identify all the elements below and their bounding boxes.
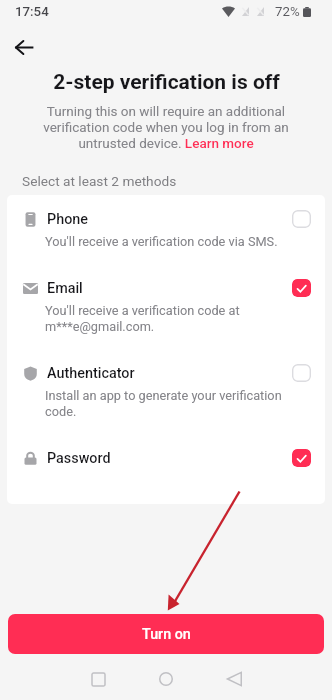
button[interactable] [292,364,311,382]
staticText: Turning this on will require an addition… [40,103,292,151]
staticText: 2-step verification is off [53,70,280,95]
staticText: Authenticator [47,365,135,382]
button[interactable]: Email [7,264,325,349]
staticText: 72% [275,4,300,20]
button[interactable]: Phone [7,195,325,264]
button[interactable]: Back [8,31,40,63]
staticText: Email [47,280,83,297]
staticText: You'll receive a verification code via S… [45,234,278,249]
button[interactable]: Authenticator [7,349,325,434]
button[interactable] [292,279,311,297]
button[interactable]: Home [146,659,186,699]
staticText: Select at least 2 methods [22,173,177,189]
button[interactable] [292,449,311,467]
button[interactable]: Recent apps [78,659,118,699]
staticText: 17:54 [15,4,49,20]
staticText: You'll receive a verification code at m*… [45,303,300,334]
staticText: Phone [47,211,89,228]
button[interactable] [292,210,311,228]
button[interactable]: Password [7,434,325,482]
staticText: Turn on [142,626,191,643]
staticText: Install an app to generate your verifica… [45,388,300,419]
button[interactable]: Back [214,659,254,699]
staticText: Password [47,450,111,467]
button[interactable]: Turn on [8,614,324,654]
